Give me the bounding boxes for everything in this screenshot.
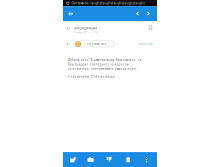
button[interactable]: Delete	[120, 152, 136, 167]
staticText: 10 апреля 2017 г., 13:55	[73, 31, 97, 33]
button[interactable]: Report spam	[101, 152, 117, 167]
staticText: C	[77, 41, 80, 47]
staticText: организатора, принимающего аккредитацию.	[68, 67, 137, 70]
staticText: Ваш ip-адрес совпадает с ip-адресом	[68, 63, 129, 66]
button[interactable]: More options	[139, 152, 155, 167]
staticText: Подписка	[138, 42, 153, 46]
button[interactable]: Move to Inbox	[65, 152, 81, 167]
button[interactable]: Back	[64, 6, 77, 21]
staticText: С уважением, СП-Регистратор.	[68, 75, 116, 78]
button[interactable]: Star message	[146, 23, 155, 32]
staticText: аккредитация	[74, 26, 97, 30]
button[interactable]: Move to folder	[83, 152, 99, 167]
staticText: Системное [laugh][laugh][laugh][laugh][l…	[71, 1, 144, 5]
button[interactable]: Newer message	[133, 6, 143, 21]
button[interactable]: Older message	[143, 6, 153, 21]
button[interactable]: Подписка	[0, 0, 221, 167]
staticText: Добрый день! В аккредитации Вам отказано…	[68, 58, 142, 62]
staticText: СП-регистратор	[87, 43, 107, 46]
